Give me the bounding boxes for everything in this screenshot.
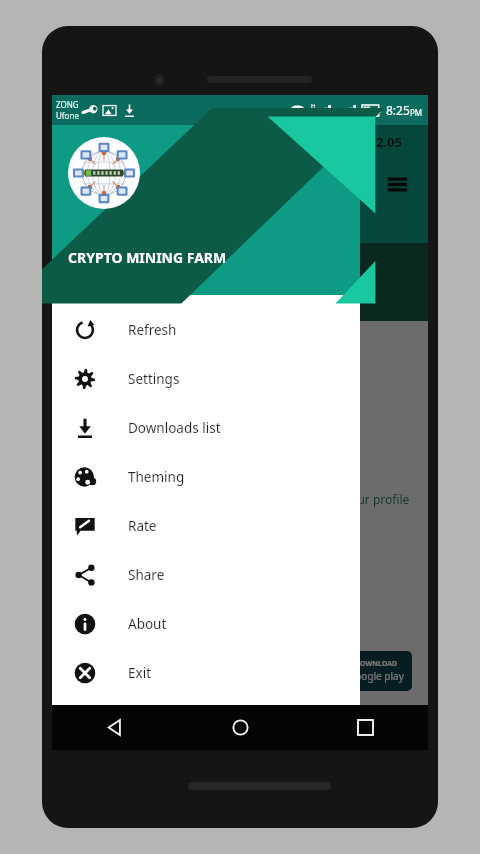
staticText: Your profile (344, 491, 410, 507)
staticText: H (311, 102, 316, 110)
button[interactable]: Open navigation menu (380, 167, 414, 201)
staticText: Settings (128, 370, 180, 388)
staticText: R (312, 110, 316, 118)
staticText: Theming (128, 468, 185, 486)
button[interactable]: Back (92, 705, 138, 750)
staticText: DOWNLOAD (355, 659, 398, 669)
staticText: 8:25 (386, 102, 410, 118)
button[interactable]: Theming (52, 452, 360, 501)
staticText: Refresh (128, 321, 177, 339)
button[interactable]: Share (52, 550, 360, 599)
button[interactable]: About (52, 599, 360, 648)
staticText: PM (410, 107, 423, 118)
button[interactable]: Settings (52, 354, 360, 403)
staticText: Google play (348, 669, 404, 683)
button[interactable]: Downloads list (52, 403, 360, 452)
button[interactable]: Exit (52, 648, 360, 697)
staticText: Exit (128, 664, 152, 682)
button[interactable]: DOWNLOAD (340, 651, 412, 691)
button[interactable]: Recent apps (342, 705, 388, 750)
button[interactable] (52, 125, 428, 705)
staticText: About (128, 615, 167, 633)
staticText: Rate (128, 517, 157, 535)
staticText: ZONG (56, 99, 79, 110)
staticText: G (336, 107, 341, 115)
button[interactable]: Rate (52, 501, 360, 550)
staticText: Downloads list (128, 419, 221, 437)
staticText: Share (128, 566, 165, 584)
staticText: CRYPTO MINING FARM (68, 248, 227, 267)
button[interactable]: Refresh (52, 305, 360, 354)
button[interactable]: Home (217, 705, 263, 750)
staticText: 2.05 (376, 133, 402, 151)
staticText: Ufone (56, 110, 79, 121)
